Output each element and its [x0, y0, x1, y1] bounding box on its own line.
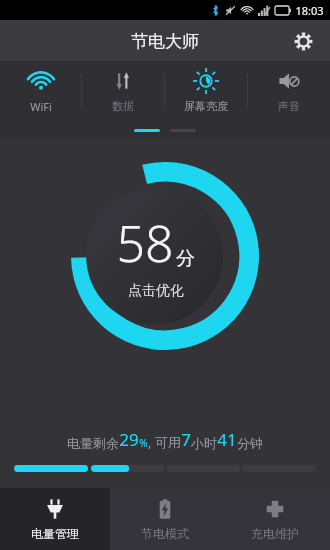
button[interactable]: 电量管理 — [0, 488, 110, 550]
staticText: 节电模式 — [141, 526, 189, 541]
button[interactable]: 58 — [71, 162, 259, 350]
staticText: 电量管理 — [31, 526, 79, 541]
staticText: 屏幕亮度 — [184, 99, 228, 113]
staticText: 分钟 — [237, 435, 263, 451]
staticText: 18:03 — [295, 3, 324, 18]
button[interactable]: 数据 — [82, 62, 164, 120]
staticText: , 可用 — [148, 433, 181, 451]
staticText: 点击优化 — [128, 282, 184, 300]
button[interactable]: 节电模式 — [110, 488, 220, 550]
staticText: % — [139, 436, 148, 450]
staticText: 电量剩余 — [67, 435, 119, 451]
staticText: 41 — [217, 428, 237, 451]
button[interactable]: 屏幕亮度 — [165, 62, 247, 120]
staticText: 充电维护 — [251, 526, 299, 541]
staticText: 58 — [116, 209, 174, 277]
staticText: 声音 — [278, 99, 300, 113]
staticText: 29 — [119, 428, 139, 451]
staticText: 7 — [181, 428, 191, 451]
button[interactable]: 声音 — [248, 62, 330, 120]
staticText: 小时 — [191, 435, 217, 451]
staticText: WiFi — [30, 99, 52, 114]
button[interactable]: 充电维护 — [220, 488, 330, 550]
button[interactable]: WiFi — [0, 62, 81, 120]
staticText: 数据 — [112, 99, 134, 113]
staticText: 分 — [176, 247, 195, 271]
staticText: 节电大师 — [131, 31, 199, 52]
button[interactable]: Settings — [286, 24, 320, 58]
